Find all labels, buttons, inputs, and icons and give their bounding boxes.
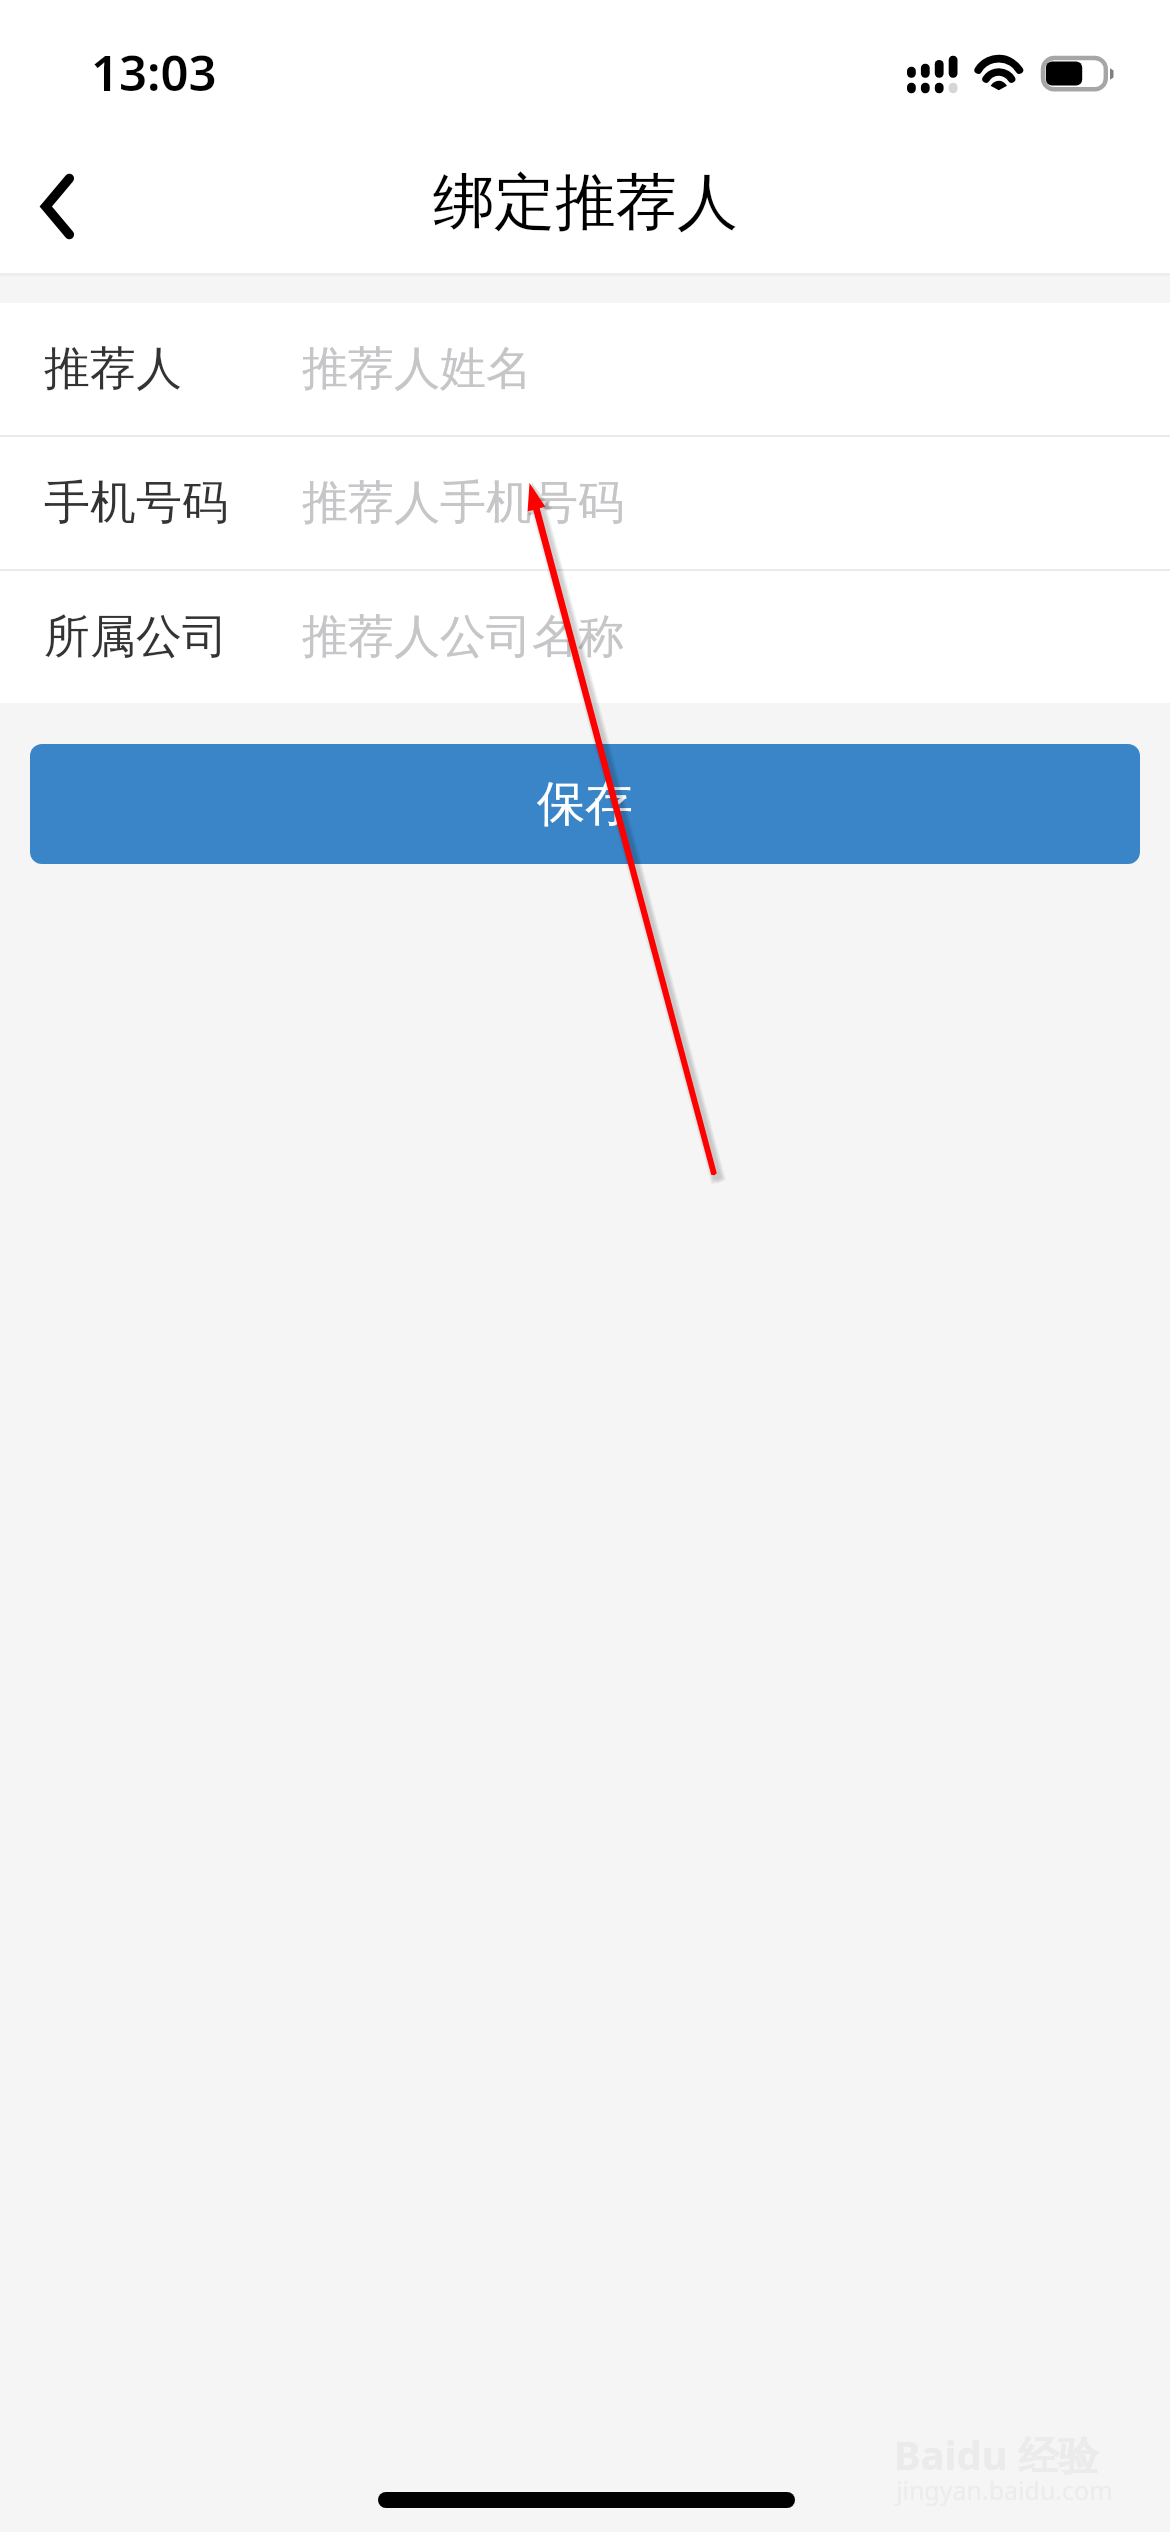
- button[interactable]: Back: [0, 148, 120, 273]
- staticText: 推荐人手机号码: [302, 474, 624, 532]
- staticText: 推荐人: [44, 340, 182, 398]
- button[interactable]: 所属公司: [0, 571, 1170, 703]
- staticText: 手机号码: [44, 474, 228, 532]
- staticText: 绑定推荐人: [433, 164, 738, 241]
- staticText: 推荐人公司名称: [302, 608, 624, 666]
- staticText: jingyan.baidu.com: [896, 2473, 1113, 2507]
- button[interactable]: 推荐人: [0, 303, 1170, 435]
- staticText: 推荐人姓名: [302, 340, 532, 398]
- staticText: Baidu 经验: [894, 2427, 1099, 2482]
- button[interactable]: 保存: [30, 744, 1140, 864]
- staticText: 所属公司: [44, 608, 228, 666]
- staticText: 保存: [537, 774, 633, 834]
- staticText: 13:03: [91, 39, 217, 106]
- button[interactable]: 手机号码: [0, 437, 1170, 569]
